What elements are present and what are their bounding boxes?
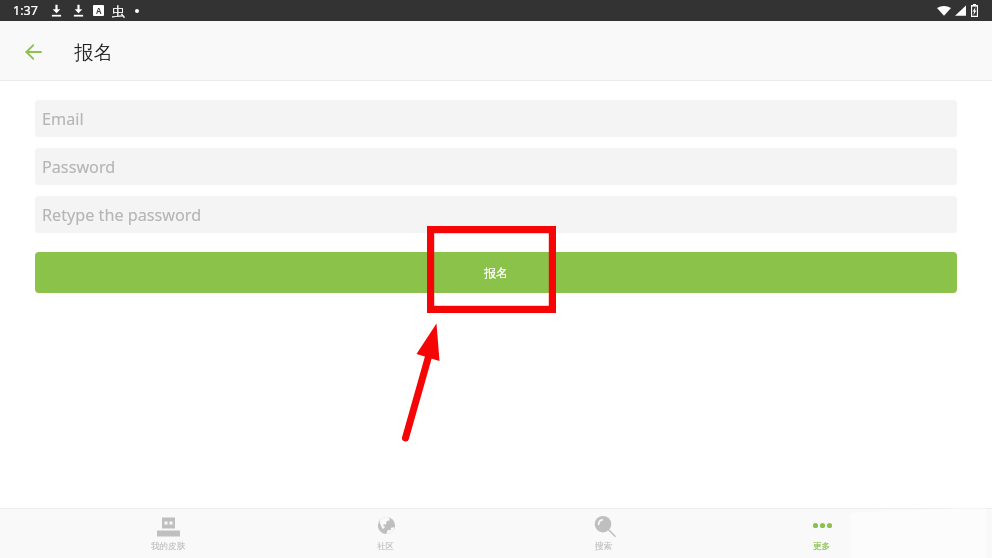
staticText: 报名 (484, 265, 508, 280)
staticText: Password (42, 156, 116, 178)
staticText: 虫 (112, 3, 125, 19)
button[interactable]: Email (35, 100, 957, 137)
button[interactable]: 我的皮肤 (59, 509, 277, 558)
staticText: 社区 (377, 541, 395, 552)
button[interactable]: Back (0, 21, 66, 81)
button[interactable]: 社区 (277, 509, 495, 558)
button[interactable]: 报名 (35, 252, 957, 293)
button[interactable]: 更多 (713, 509, 931, 558)
staticText: A (96, 5, 102, 16)
button[interactable]: Password (35, 148, 957, 185)
staticText: 搜索 (595, 541, 613, 552)
staticText: Email (42, 108, 84, 130)
staticText: Retype the password (42, 204, 202, 226)
staticText: 我的皮肤 (151, 541, 186, 552)
staticText: 更多 (813, 541, 831, 552)
button[interactable]: Retype the password (35, 196, 957, 233)
staticText: 1:37 (13, 2, 38, 19)
staticText: 报名 (74, 40, 113, 65)
button[interactable]: 搜索 (495, 509, 713, 558)
